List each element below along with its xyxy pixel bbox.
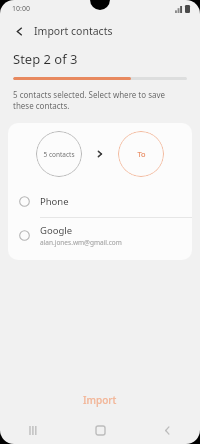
staticText: alan.jones.wm@gmail.com [40, 238, 122, 247]
button[interactable]: Home [85, 416, 115, 444]
button[interactable]: Google [8, 218, 192, 252]
staticText: Step 2 of 3 [13, 50, 78, 68]
button[interactable]: Recents [18, 416, 48, 444]
staticText: Import contacts [34, 24, 113, 38]
staticText: 10:00 [12, 4, 30, 14]
button[interactable]: Back [152, 416, 182, 444]
staticText: 5 contacts selected. Select where to sav… [13, 89, 187, 111]
button[interactable]: Import [0, 384, 200, 416]
staticText: Google [40, 224, 73, 237]
staticText: To [137, 149, 146, 159]
button[interactable]: Back [10, 22, 28, 40]
staticText: 5 contacts [43, 150, 75, 159]
staticText: Phone [40, 195, 69, 208]
button[interactable]: 5 contacts [36, 131, 82, 177]
button[interactable]: Phone [8, 185, 192, 217]
staticText: Import [83, 393, 117, 407]
button[interactable]: To [118, 131, 164, 177]
